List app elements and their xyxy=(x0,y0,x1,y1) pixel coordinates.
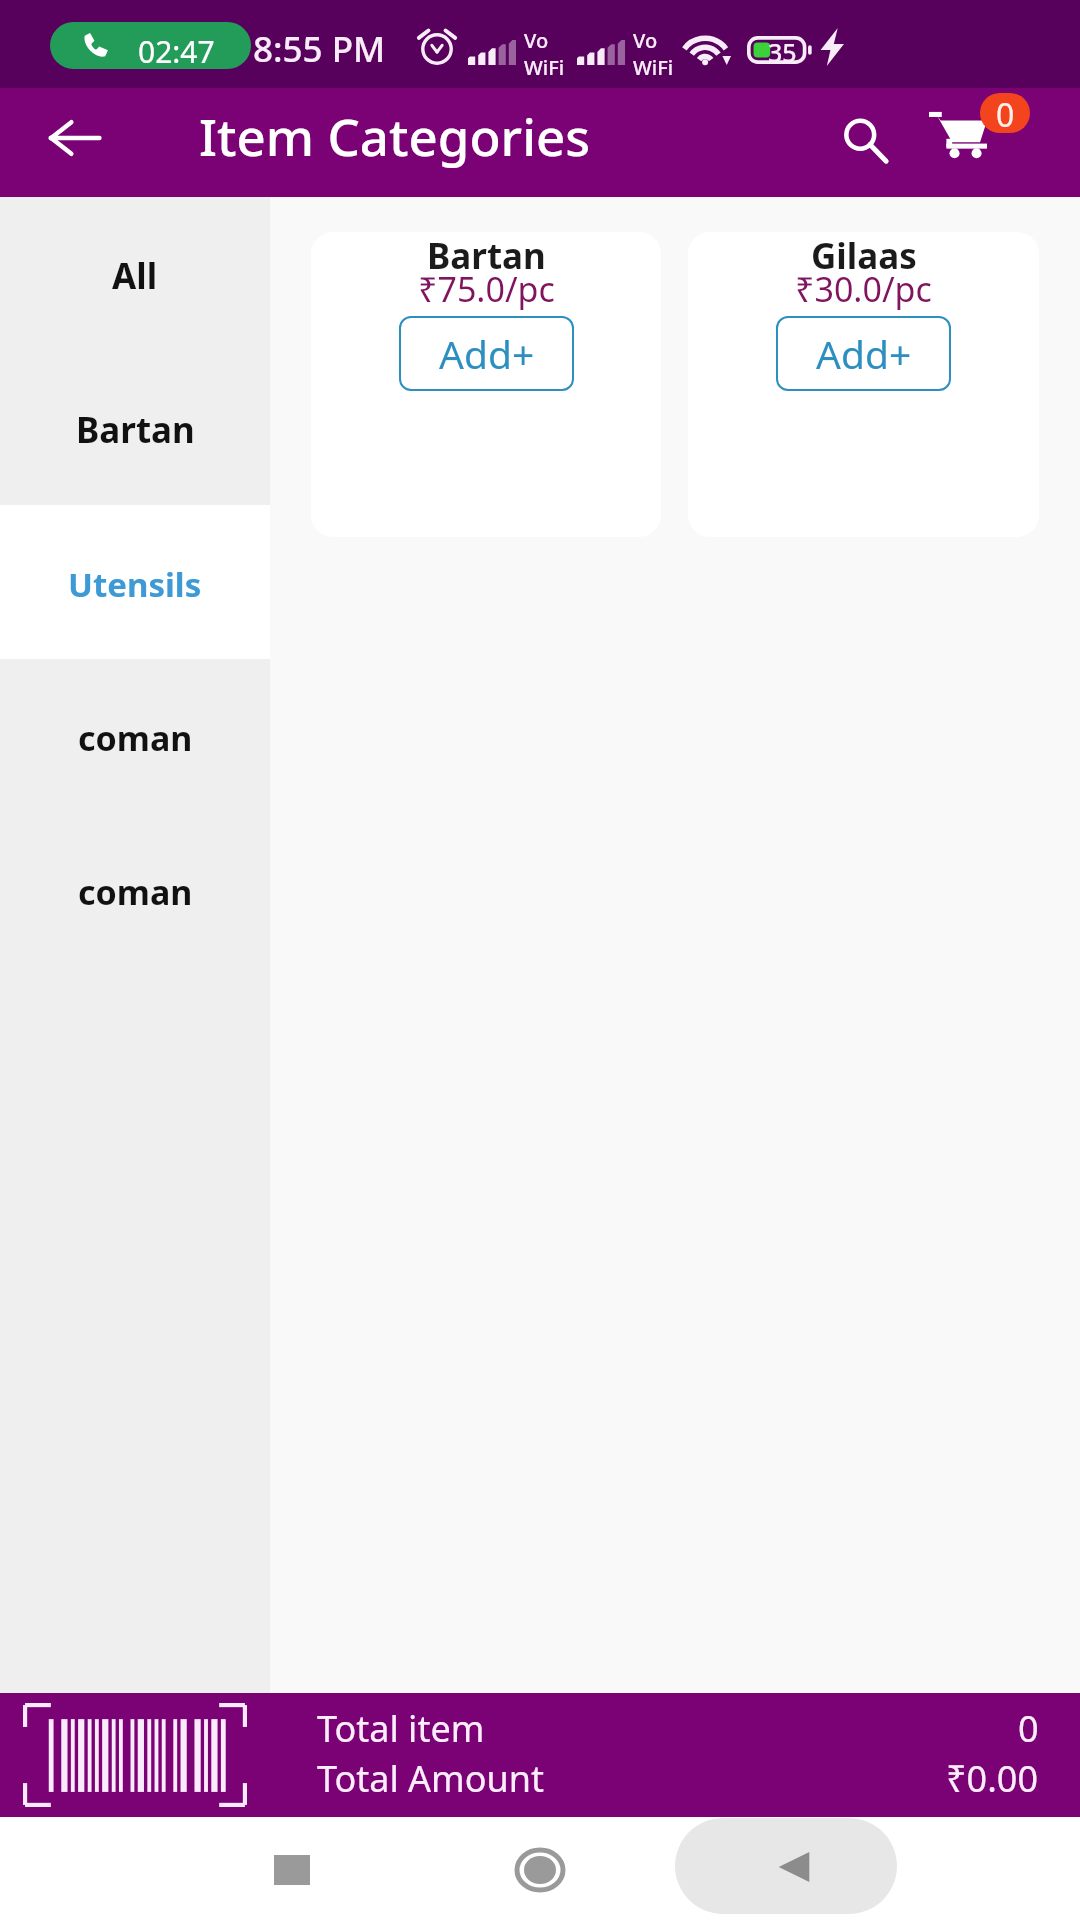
button[interactable]: Back xyxy=(18,88,130,197)
staticText: Bartan xyxy=(76,406,195,454)
button[interactable]: coman xyxy=(0,659,270,813)
button[interactable]: Gilaas xyxy=(688,232,1039,537)
staticText: 0 xyxy=(996,93,1015,133)
staticText: Bartan xyxy=(427,232,546,280)
button[interactable]: Scan barcode xyxy=(0,1693,270,1817)
staticText: ₹30.0/pc xyxy=(795,266,932,312)
staticText: WiFi xyxy=(633,54,674,81)
staticText: Total Amount xyxy=(317,1754,545,1803)
staticText: Vo xyxy=(524,27,549,54)
button[interactable]: Recents xyxy=(232,1817,352,1920)
button[interactable]: Add Bartan xyxy=(399,316,574,391)
staticText: 8:55 PM xyxy=(253,25,386,73)
button[interactable]: Add Gilaas xyxy=(776,316,951,391)
button[interactable]: Cart xyxy=(920,88,1048,197)
button[interactable]: Bartan xyxy=(0,351,270,505)
staticText: Vo xyxy=(633,27,658,54)
staticText: All xyxy=(112,252,158,300)
staticText: 02:47 xyxy=(138,31,215,69)
staticText: Add+ xyxy=(816,327,912,380)
staticText: coman xyxy=(78,715,193,761)
button[interactable]: Utensils xyxy=(0,505,270,659)
button[interactable]: Back xyxy=(675,1818,897,1914)
button[interactable]: Search xyxy=(812,88,920,197)
staticText: 35 xyxy=(768,35,797,63)
staticText: Add+ xyxy=(439,327,535,380)
button[interactable]: Home xyxy=(480,1817,600,1920)
button[interactable]: coman xyxy=(0,813,270,967)
staticText: ₹75.0/pc xyxy=(418,266,555,312)
staticText: ₹0.00 xyxy=(946,1754,1039,1803)
staticText: Utensils xyxy=(68,562,202,607)
button[interactable]: All xyxy=(0,197,270,351)
staticText: Total item xyxy=(317,1704,485,1753)
staticText: Gilaas xyxy=(811,232,917,280)
staticText: WiFi xyxy=(524,54,565,81)
staticText: 0 xyxy=(1018,1704,1039,1753)
staticText: coman xyxy=(78,869,193,915)
staticText: Item Categories xyxy=(199,101,590,170)
button[interactable]: Bartan xyxy=(311,232,661,537)
